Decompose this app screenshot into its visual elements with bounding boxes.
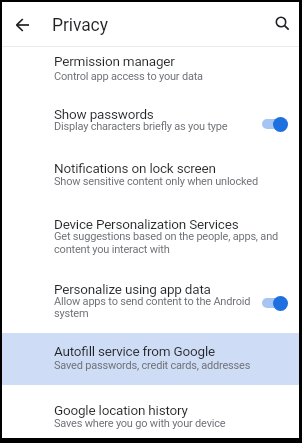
staticText: Google location history	[54, 402, 188, 418]
button[interactable]: Permission manager	[2, 47, 299, 97]
staticText: system	[54, 307, 89, 320]
staticText: content you interact with	[54, 243, 170, 256]
button[interactable]: Google location history	[2, 385, 299, 438]
button[interactable]: Device Personalization Services	[2, 206, 299, 272]
staticText: Allow apps to send content to the Androi…	[54, 295, 251, 308]
staticText: Display characters briefly as you type	[54, 120, 228, 133]
button[interactable]: Autofill service from Google	[2, 333, 299, 385]
button[interactable]: Notifications on lock screen	[2, 151, 299, 206]
button[interactable]	[262, 295, 288, 311]
staticText: Show passwords	[54, 106, 154, 122]
staticText: Permission manager	[54, 53, 175, 69]
button[interactable]	[5, 5, 41, 45]
staticText: Personalize using app data	[54, 281, 211, 297]
button[interactable]	[262, 116, 288, 132]
staticText: Privacy	[52, 15, 108, 36]
staticText: Get suggestions based on the people, app…	[54, 230, 279, 243]
staticText: Show sensitive content only when unlocke…	[54, 175, 258, 188]
staticText: Saves where you go with your device	[54, 417, 226, 430]
staticText: Autofill service from Google	[54, 343, 216, 359]
button[interactable]: Personalize using app data	[2, 272, 299, 333]
staticText: Control app access to your data	[54, 70, 203, 83]
staticText: Device Personalization Services	[54, 216, 239, 232]
button[interactable]	[264, 4, 300, 44]
button[interactable]: Show passwords	[2, 97, 299, 151]
staticText: Notifications on lock screen	[54, 160, 216, 176]
staticText: Saved passwords, credit cards, addresses	[54, 359, 251, 372]
